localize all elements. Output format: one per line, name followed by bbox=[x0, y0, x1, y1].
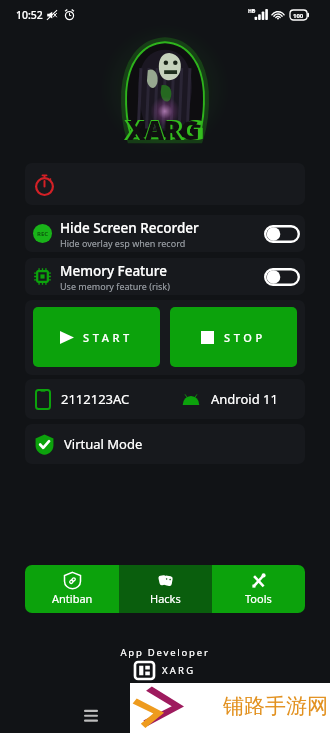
staticText: Android 11 bbox=[211, 390, 278, 408]
staticText: Memory Feature bbox=[60, 262, 167, 280]
staticText: Tools bbox=[245, 591, 272, 606]
button[interactable]: 2112123AC bbox=[25, 379, 305, 419]
staticText: 100 bbox=[293, 12, 304, 20]
staticText: 2112123AC bbox=[61, 390, 130, 408]
button[interactable]: Virtual Mode bbox=[25, 424, 305, 464]
staticText: Virtual Mode bbox=[64, 435, 143, 453]
staticText: 铺路手游网 bbox=[223, 693, 328, 719]
button[interactable]: Antiban bbox=[25, 565, 119, 613]
button[interactable]: REC bbox=[25, 215, 305, 252]
staticText: XARG bbox=[127, 112, 200, 147]
staticText: XARG bbox=[124, 109, 204, 148]
staticText: STOP bbox=[224, 330, 266, 345]
staticText: App Developer bbox=[0, 646, 330, 659]
button[interactable]: Memory Feature bbox=[25, 258, 305, 295]
button[interactable] bbox=[264, 225, 300, 243]
staticText: START bbox=[83, 330, 133, 345]
button[interactable]: Tools bbox=[212, 565, 305, 613]
staticText: 10:52 bbox=[16, 8, 43, 22]
button[interactable]: Timer bbox=[25, 163, 305, 205]
staticText: Antiban bbox=[52, 591, 93, 606]
staticText: Use memory feature (risk) bbox=[60, 280, 170, 292]
button[interactable] bbox=[264, 268, 300, 286]
staticText: XARG bbox=[162, 664, 196, 677]
button[interactable]: START bbox=[33, 307, 160, 367]
staticText: REC bbox=[37, 230, 49, 238]
button[interactable]: Hacks bbox=[119, 565, 212, 613]
staticText: Hacks bbox=[150, 591, 181, 606]
staticText: HD bbox=[248, 8, 256, 15]
staticText: Hide overlay esp when record bbox=[60, 237, 186, 249]
other: Menu bbox=[84, 709, 98, 721]
button[interactable]: STOP bbox=[170, 307, 297, 367]
staticText: Hide Screen Recorder bbox=[60, 219, 199, 237]
